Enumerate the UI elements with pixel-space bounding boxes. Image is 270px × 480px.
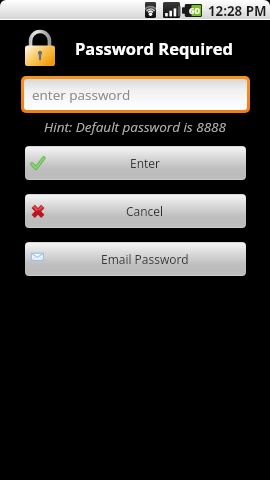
staticText: enter password — [32, 86, 131, 104]
button[interactable]: enter password — [24, 79, 247, 110]
staticText: Hint: Default password is 8888 — [44, 118, 226, 136]
staticText: Enter — [130, 155, 160, 171]
staticText: 12:28 PM — [208, 2, 267, 18]
other: Wi-Fi — [145, 2, 156, 18]
staticText: Password Required — [75, 37, 233, 59]
button[interactable]: Enter — [25, 146, 246, 180]
other: Signal strength — [163, 2, 180, 18]
button[interactable]: Cancel — [25, 194, 246, 228]
other: Battery — [182, 4, 202, 17]
button[interactable]: Email Password — [25, 242, 246, 276]
staticText: Cancel — [126, 203, 164, 219]
staticText: Email Password — [101, 251, 189, 267]
staticText: 60 — [189, 4, 200, 17]
